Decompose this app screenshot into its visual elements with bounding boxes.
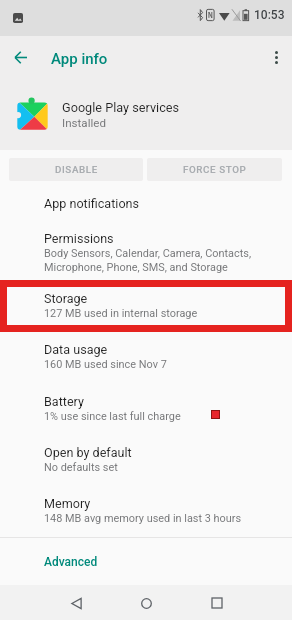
button[interactable]: DISABLE [9,158,143,181]
button[interactable]: Battery [0,389,292,440]
staticText: Data usage [44,342,108,357]
staticText: App info [51,50,108,68]
staticText: 10:53 [254,8,285,22]
staticText: 160 MB used since Nov 7 [44,358,167,371]
button[interactable]: Storage [0,286,292,337]
staticText: Storage [44,291,88,306]
staticText: Permissions [44,231,114,246]
button[interactable]: Permissions [0,226,292,286]
staticText: Open by default [44,445,132,460]
staticText: DISABLE [55,164,98,175]
button[interactable]: More options [262,43,290,71]
button[interactable]: App notifications [0,191,292,226]
staticText: Memory [44,496,91,511]
button[interactable]: Data usage [0,337,292,389]
staticText: Google Play services [62,100,180,115]
button[interactable]: Open by default [0,440,292,491]
staticText: Advanced [44,555,98,569]
staticText: FORCE STOP [183,164,247,175]
staticText: Body Sensors, Calendar, Camera, Contacts… [44,247,252,273]
button[interactable]: Advanced [0,538,292,576]
staticText: No defaults set [44,461,118,474]
staticText: Installed [62,116,106,130]
staticText: Battery [44,394,84,409]
staticText: 1% use since last full charge [44,410,181,423]
button[interactable]: Recent apps [203,589,231,617]
button[interactable]: Navigate up [6,43,34,71]
staticText: 127 MB used in internal storage [44,307,198,320]
staticText: 148 MB avg memory used in last 3 hours [44,512,242,525]
button[interactable]: Home [132,589,160,617]
button[interactable]: Back [62,589,90,617]
staticText: App notifications [44,196,140,211]
button[interactable]: Memory [0,491,292,537]
button[interactable]: FORCE STOP [147,158,282,181]
